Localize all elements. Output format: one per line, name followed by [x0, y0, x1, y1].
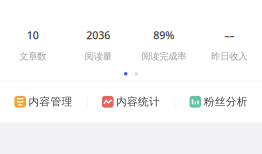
staticText: 粉丝分析 [204, 95, 248, 108]
button[interactable]: 内容统计 [88, 81, 174, 122]
staticText: 昨日收入 [211, 51, 247, 62]
staticText: 89% [153, 28, 174, 42]
button[interactable]: 粉丝分析 [175, 81, 262, 122]
button[interactable]: 内容管理 [0, 81, 87, 122]
staticText: 2036 [86, 28, 110, 42]
staticText: 文章数 [19, 51, 46, 62]
staticText: 内容管理 [28, 95, 72, 108]
staticText: 内容统计 [116, 95, 160, 108]
staticText: 阅读量 [85, 51, 112, 62]
staticText: 阅读完成率 [141, 51, 186, 62]
staticText: –– [224, 28, 234, 42]
staticText: 10 [27, 28, 39, 42]
